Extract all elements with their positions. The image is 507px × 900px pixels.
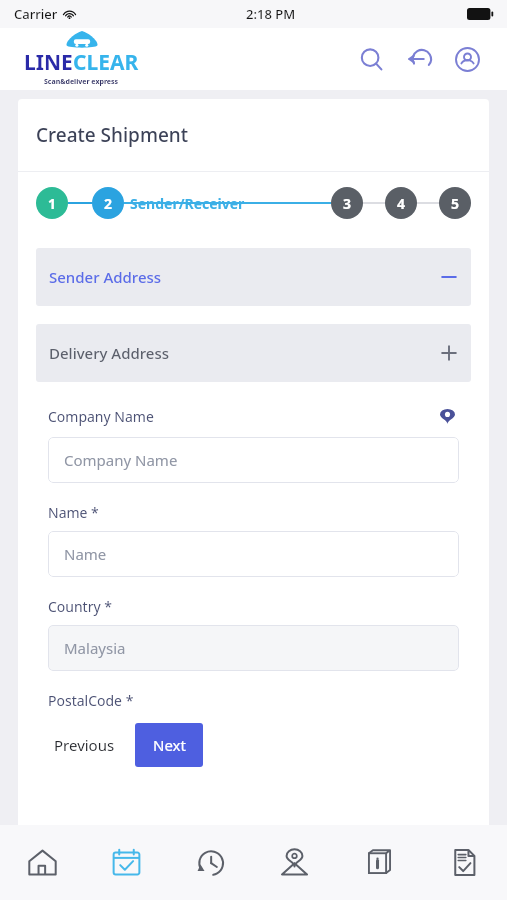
button[interactable]: History [168,825,252,900]
staticText: Create Shipment [36,122,188,148]
button[interactable]: Home [0,825,84,900]
button[interactable]: Delivery Address [36,324,471,382]
staticText: 5 [451,194,460,213]
button[interactable]: 4 [385,187,417,219]
staticText: Previous [54,735,115,755]
staticText: Sender/Receiver [130,194,245,213]
button[interactable]: Logout [399,39,439,79]
button[interactable]: 5 [439,187,471,219]
staticText: 1 [48,194,57,213]
button[interactable]: Profile [447,39,487,79]
staticText: Company Name [64,450,178,470]
staticText: 2 [104,194,113,213]
button[interactable]: Company Name [48,437,459,483]
button[interactable]: Previous [48,725,121,765]
button[interactable]: Sender Address [36,248,471,306]
button[interactable]: Track location [252,825,337,900]
button[interactable]: Malaysia [48,625,459,671]
button[interactable]: Packages [337,825,422,900]
button[interactable]: Search [351,39,391,79]
button[interactable]: Next [135,723,203,767]
staticText: CLEAR [73,48,139,77]
staticText: Malaysia [64,638,126,658]
staticText: Scan&deliver express [44,77,119,87]
button[interactable]: Name [48,531,459,577]
staticText: Sender Address [49,267,162,287]
button[interactable]: Pick location [435,404,459,428]
staticText: Delivery Address [49,343,170,363]
button[interactable]: Documents [422,825,507,900]
button[interactable]: 1 [36,187,68,219]
button[interactable]: 2 [92,187,124,219]
staticText: 3 [343,194,352,213]
staticText: 2:18 PM [246,5,296,23]
staticText: Country * [48,597,112,616]
button[interactable]: Create shipment [84,825,168,900]
staticText: Company Name [48,407,154,426]
staticText: Name [64,544,107,564]
staticText: 4 [397,194,406,213]
staticText: PostalCode * [48,691,134,710]
button[interactable]: 3 [331,187,363,219]
staticText: Next [153,735,186,755]
staticText: LINE [24,48,73,77]
staticText: Name * [48,503,99,522]
staticText: Carrier [14,5,58,23]
